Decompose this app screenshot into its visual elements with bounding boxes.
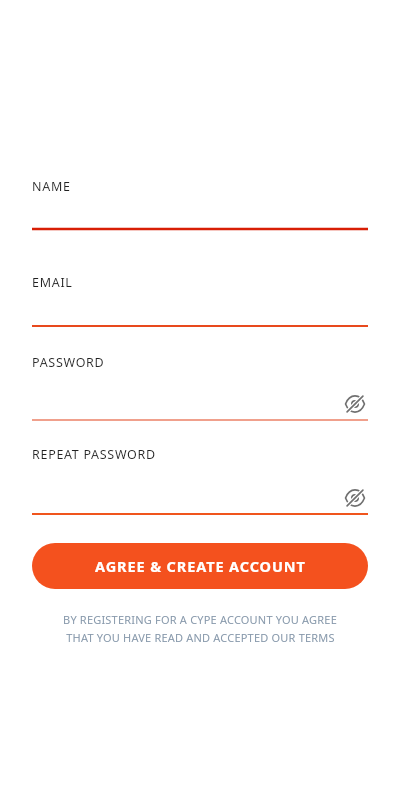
staticText: AGREE & CREATE ACCOUNT [95, 556, 306, 576]
staticText: REPEAT PASSWORD [32, 446, 156, 463]
staticText: THAT YOU HAVE READ AND ACCEPTED OUR TERM… [66, 630, 335, 645]
staticText: NAME [32, 178, 71, 195]
button[interactable]: Show repeat password [342, 485, 368, 511]
staticText: EMAIL [32, 274, 73, 291]
staticText: PASSWORD [32, 354, 105, 371]
staticText: BY REGISTERING FOR A CYPE ACCOUNT YOU AG… [63, 612, 337, 627]
button[interactable]: Show password [342, 391, 368, 417]
button[interactable]: AGREE & CREATE ACCOUNT [32, 543, 368, 589]
